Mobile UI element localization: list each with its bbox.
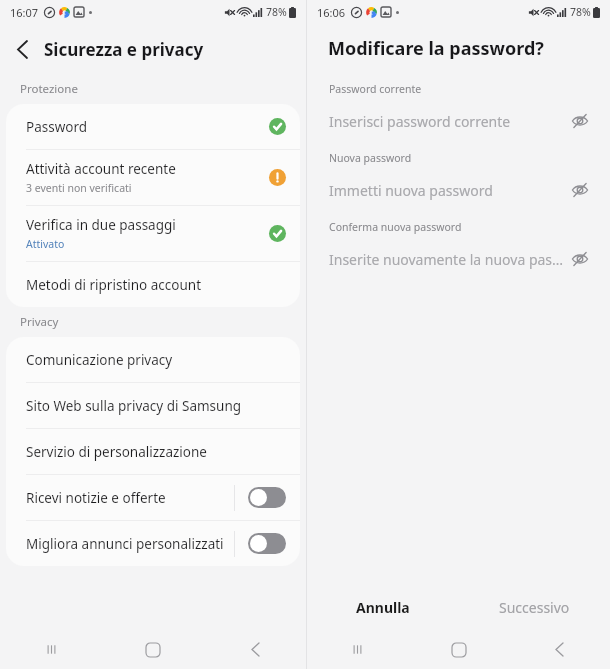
staticText: Annulla bbox=[356, 598, 410, 617]
button[interactable]: Recents bbox=[0, 630, 102, 669]
button[interactable]: Toggle bbox=[248, 487, 286, 508]
staticText: Ricevi notizie e offerte bbox=[26, 489, 166, 507]
button[interactable]: Password bbox=[6, 104, 300, 149]
staticText: Servizio di personalizzazione bbox=[26, 443, 207, 461]
staticText: Nuova password bbox=[329, 151, 412, 165]
staticText: Privacy bbox=[20, 314, 59, 330]
staticText: Protezione bbox=[20, 81, 78, 97]
staticText: Sicurezza e privacy bbox=[44, 38, 204, 61]
staticText: Modificare la password? bbox=[328, 36, 544, 61]
button[interactable]: Ricevi notizie e offerte bbox=[6, 475, 300, 520]
staticText: Password corrente bbox=[329, 82, 422, 96]
button[interactable]: Toggle bbox=[248, 533, 286, 554]
staticText: Attività account recente bbox=[26, 160, 176, 178]
button[interactable]: Home bbox=[408, 630, 509, 669]
button[interactable]: Recents bbox=[307, 630, 408, 669]
button[interactable]: Inserisci password corrente bbox=[307, 106, 610, 136]
staticText: 78% bbox=[266, 5, 287, 19]
staticText: Comunicazione privacy bbox=[26, 351, 173, 369]
button[interactable]: Sito Web sulla privacy di Samsung bbox=[6, 383, 300, 428]
button[interactable]: Annulla bbox=[307, 584, 458, 630]
button[interactable]: Back bbox=[0, 27, 44, 71]
staticText: Inserisci password corrente bbox=[329, 112, 568, 131]
button[interactable]: Show password bbox=[568, 247, 592, 271]
button[interactable]: Servizio di personalizzazione bbox=[6, 429, 300, 474]
button[interactable]: Migliora annunci personalizzati bbox=[6, 521, 300, 566]
staticText: Successivo bbox=[499, 598, 570, 617]
staticText: Conferma nuova password bbox=[329, 220, 462, 234]
staticText: Migliora annunci personalizzati bbox=[26, 535, 224, 553]
button[interactable]: Verifica in due passaggi bbox=[6, 206, 300, 261]
staticText: 78% bbox=[570, 5, 591, 19]
staticText: 16:07 bbox=[10, 5, 39, 20]
staticText: Inserite nuovamente la nuova pass… bbox=[329, 250, 568, 269]
button[interactable]: Show password bbox=[568, 178, 592, 202]
button[interactable]: Comunicazione privacy bbox=[6, 337, 300, 382]
staticText: Verifica in due passaggi bbox=[26, 216, 176, 234]
button[interactable]: Successivo bbox=[458, 584, 610, 630]
button[interactable]: Immetti nuova password bbox=[307, 175, 610, 205]
staticText: Attivato bbox=[26, 237, 65, 251]
staticText: 16:06 bbox=[317, 5, 346, 20]
button[interactable]: Show password bbox=[568, 109, 592, 133]
staticText: Immetti nuova password bbox=[329, 181, 568, 200]
button[interactable]: Attività account recente bbox=[6, 150, 300, 205]
staticText: Metodi di ripristino account bbox=[26, 276, 202, 294]
button[interactable]: Back bbox=[204, 630, 306, 669]
button[interactable]: Metodi di ripristino account bbox=[6, 262, 300, 307]
staticText: 3 eventi non verificati bbox=[26, 181, 132, 195]
staticText: Sito Web sulla privacy di Samsung bbox=[26, 397, 242, 415]
staticText: Password bbox=[26, 118, 88, 136]
button[interactable]: Back bbox=[509, 630, 610, 669]
button[interactable]: Home bbox=[102, 630, 204, 669]
button[interactable]: Inserite nuovamente la nuova pass… bbox=[307, 244, 610, 274]
